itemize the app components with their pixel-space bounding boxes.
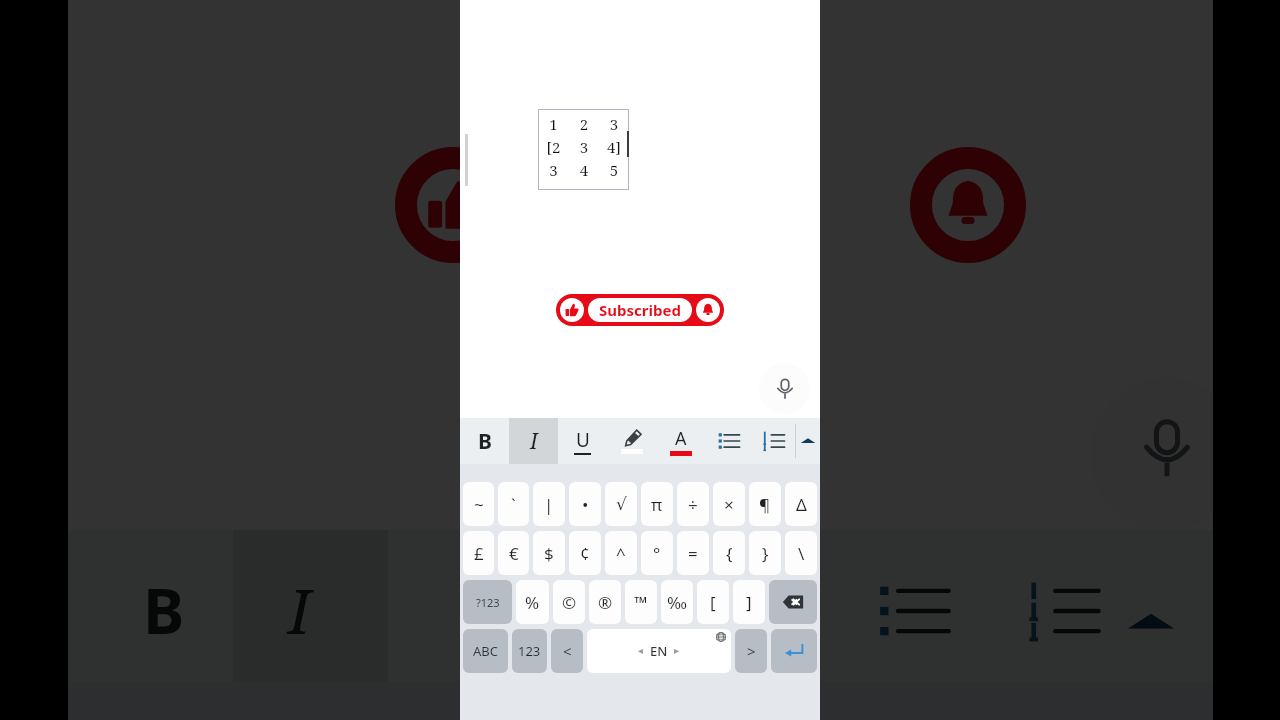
staticText: {: [726, 542, 733, 565]
button[interactable]: }: [749, 531, 781, 575]
button[interactable]: Text colour: [656, 418, 705, 464]
staticText: 5: [599, 160, 629, 180]
button[interactable]: ‰: [661, 580, 693, 624]
button[interactable]: £: [463, 531, 494, 575]
button[interactable]: Subscribed: [556, 294, 724, 326]
button[interactable]: Underline: [558, 418, 607, 464]
staticText: %: [525, 591, 540, 614]
staticText: 3: [538, 160, 569, 180]
button[interactable]: ¢: [569, 531, 601, 575]
staticText: =: [688, 542, 698, 565]
staticText: ?123: [476, 595, 500, 610]
button[interactable]: `: [498, 482, 529, 526]
button[interactable]: {: [713, 531, 745, 575]
button[interactable]: Space, EN: [587, 629, 731, 673]
staticText: 4: [569, 160, 599, 180]
button[interactable]: Backspace: [769, 580, 817, 624]
button[interactable]: ©: [553, 580, 585, 624]
staticText: 123: [518, 642, 541, 660]
button[interactable]: %: [516, 580, 549, 624]
button[interactable]: \: [785, 531, 817, 575]
button[interactable]: [: [697, 580, 729, 624]
staticText: ~: [474, 493, 484, 516]
button[interactable]: ™: [625, 580, 657, 624]
button[interactable]: •: [569, 482, 601, 526]
staticText: A: [675, 426, 687, 451]
button[interactable]: <: [551, 629, 583, 673]
button[interactable]: Bulleted list: [705, 418, 753, 464]
staticText: <: [563, 641, 572, 661]
staticText: ◂: [638, 645, 644, 657]
staticText: Subscribed: [599, 300, 681, 320]
staticText: ¢: [580, 542, 590, 565]
button[interactable]: Voice input: [759, 363, 810, 414]
staticText: B: [143, 568, 185, 652]
staticText: ©: [562, 591, 577, 614]
staticText: ‰: [667, 591, 688, 614]
staticText: ¶: [759, 493, 771, 516]
staticText: U: [576, 427, 590, 453]
button[interactable]: €: [498, 531, 529, 575]
staticText: 3: [569, 137, 599, 157]
staticText: [: [710, 591, 716, 614]
staticText: }: [762, 542, 769, 565]
button[interactable]: π: [641, 482, 673, 526]
staticText: B: [478, 427, 492, 456]
staticText: \: [798, 542, 805, 565]
button[interactable]: ÷: [677, 482, 709, 526]
button[interactable]: °: [641, 531, 673, 575]
staticText: ™: [634, 591, 648, 614]
staticText: √: [616, 494, 627, 514]
button[interactable]: ?123: [463, 580, 512, 624]
staticText: I: [530, 427, 538, 456]
staticText: `: [511, 493, 516, 516]
button[interactable]: ~: [463, 482, 494, 526]
button[interactable]: Collapse toolbar: [796, 418, 820, 464]
button[interactable]: Italic: [509, 418, 558, 464]
staticText: ▸: [674, 645, 680, 657]
button[interactable]: ^: [605, 531, 637, 575]
button[interactable]: ]: [733, 580, 765, 624]
button[interactable]: ¶: [749, 482, 781, 526]
staticText: ]: [746, 591, 752, 614]
button[interactable]: Numbered list: [753, 418, 795, 464]
button[interactable]: ®: [589, 580, 621, 624]
button[interactable]: 123: [512, 629, 547, 673]
staticText: π: [651, 493, 663, 516]
staticText: |: [544, 493, 554, 516]
staticText: 2: [569, 114, 599, 134]
button[interactable]: |: [533, 482, 565, 526]
staticText: ^: [616, 542, 626, 565]
button[interactable]: ABC: [463, 629, 508, 673]
button[interactable]: ×: [713, 482, 745, 526]
staticText: EN: [650, 642, 668, 660]
staticText: ®: [598, 591, 613, 614]
staticText: •: [582, 493, 589, 516]
staticText: ÷: [688, 493, 698, 516]
button[interactable]: Highlight: [607, 418, 656, 464]
staticText: ABC: [473, 642, 498, 660]
button[interactable]: √: [605, 482, 637, 526]
staticText: Δ: [796, 493, 807, 516]
button[interactable]: Bold: [460, 418, 509, 464]
button[interactable]: Δ: [785, 482, 817, 526]
button[interactable]: $: [533, 531, 565, 575]
staticText: 1: [538, 114, 569, 134]
staticText: I: [288, 568, 311, 652]
button[interactable]: >: [735, 629, 767, 673]
staticText: £: [474, 542, 484, 565]
staticText: 3: [599, 114, 629, 134]
button[interactable]: =: [677, 531, 709, 575]
staticText: ×: [724, 493, 734, 516]
staticText: [2: [538, 137, 569, 157]
staticText: 4]: [599, 137, 629, 157]
staticText: €: [509, 542, 519, 565]
staticText: °: [653, 542, 661, 565]
button[interactable]: Enter: [771, 629, 817, 673]
staticText: $: [544, 542, 554, 565]
staticText: >: [747, 641, 756, 661]
